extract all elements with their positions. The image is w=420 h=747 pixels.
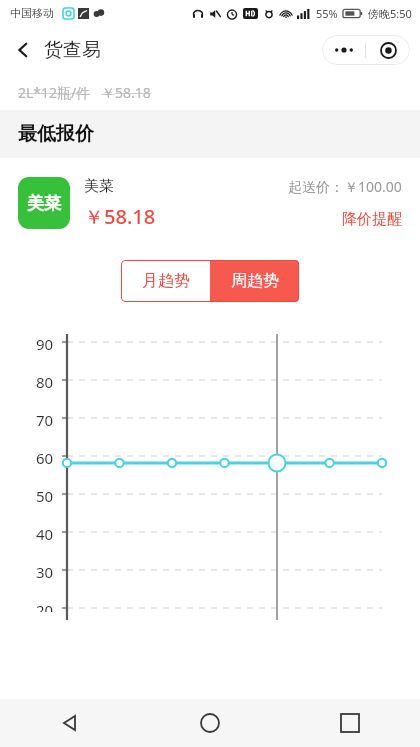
other: Back <box>14 41 32 59</box>
staticText: 最低报价 <box>18 122 94 146</box>
button[interactable]: Home <box>140 699 280 747</box>
staticText: 月趋势 <box>142 271 190 291</box>
staticText: 中国移动 <box>10 6 54 20</box>
button[interactable]: 美菜 <box>0 158 420 248</box>
staticText: 降价提醒 <box>342 210 402 229</box>
button[interactable]: 周趋势 <box>210 260 299 302</box>
button[interactable]: Recents <box>280 699 420 747</box>
staticText: 60 <box>36 448 54 468</box>
staticText: ￥58.18 <box>84 203 156 230</box>
staticText: 55% <box>316 6 338 21</box>
staticText: ￥58.18 <box>101 83 151 102</box>
staticText: 2L*12瓶/件 <box>18 83 91 102</box>
button[interactable]: 月趋势 <box>121 260 210 302</box>
staticText: 美菜 <box>84 177 114 196</box>
button[interactable]: Close <box>366 35 410 65</box>
staticText: 70 <box>36 410 54 430</box>
button[interactable]: Back <box>0 699 140 747</box>
staticText: 周趋势 <box>231 271 279 291</box>
staticText: 货查易 <box>44 38 101 62</box>
button[interactable]: Back <box>8 34 107 66</box>
staticText: 90 <box>36 334 54 354</box>
staticText: 50 <box>36 486 54 506</box>
button[interactable]: 降价提醒 <box>342 210 402 229</box>
staticText: 80 <box>36 372 54 392</box>
button[interactable]: More <box>322 35 365 65</box>
staticText: 起送价：￥100.00 <box>288 177 402 196</box>
staticText: 20 <box>36 600 54 612</box>
staticText: 傍晚5:50 <box>368 6 412 21</box>
staticText: 40 <box>36 524 54 544</box>
staticText: 美菜 <box>27 193 61 214</box>
staticText: 30 <box>36 562 54 582</box>
